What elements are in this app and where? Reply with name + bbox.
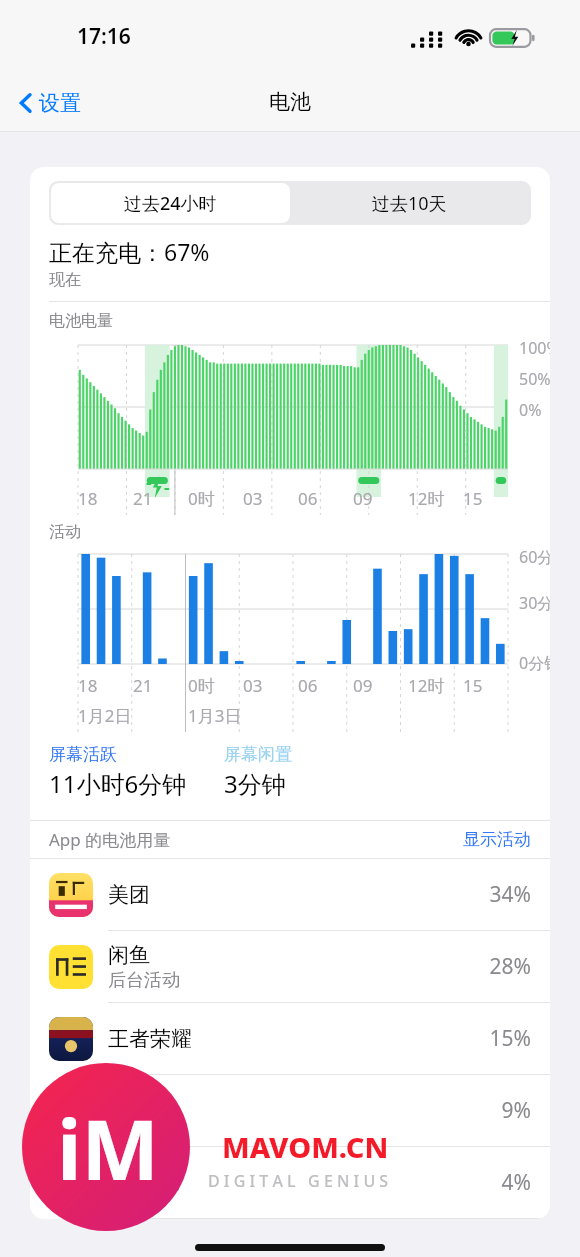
staticText: 显示活动 — [463, 829, 531, 850]
staticText: 15% — [489, 1024, 531, 1053]
staticText: 18 — [78, 674, 98, 697]
staticText: 9% — [501, 1096, 531, 1125]
staticText: 0时 — [188, 674, 215, 697]
staticText: 03 — [243, 674, 263, 697]
staticText: 12时 — [408, 674, 445, 697]
button[interactable]: 闲鱼 — [30, 931, 550, 1002]
staticText: 0时 — [188, 487, 215, 510]
button[interactable]: 后台活动 — [30, 1147, 550, 1218]
staticText: 3分钟 — [224, 767, 286, 800]
staticText: 15 — [463, 674, 483, 697]
staticText: 17:16 — [77, 22, 131, 51]
staticText: 100% — [519, 337, 550, 359]
staticText: 4% — [501, 1168, 531, 1197]
staticText: 0% — [519, 399, 542, 421]
staticText: 活动 — [49, 522, 81, 542]
button[interactable]: 过去10天 — [290, 183, 529, 223]
staticText: 18 — [78, 487, 98, 510]
staticText: 设置 — [39, 90, 81, 116]
staticText: 11小时6分钟 — [49, 767, 187, 800]
staticText: 屏幕闲置 — [224, 744, 292, 765]
button[interactable]: 显示活动 — [463, 829, 531, 850]
staticText: 06 — [298, 674, 318, 697]
staticText: 过去24小时 — [124, 191, 217, 216]
staticText: 60分钟 — [519, 546, 550, 568]
staticText: 28% — [489, 952, 531, 981]
staticText: 屏幕活跃 — [49, 744, 117, 765]
staticText: 后台活动 — [108, 969, 180, 992]
staticText: D I G I T A L G E N I U S — [208, 1170, 389, 1192]
staticText: 03 — [243, 487, 263, 510]
staticText: 21 — [133, 487, 153, 510]
button[interactable]: 过去24小时 — [51, 183, 290, 223]
staticText: App 的电池用量 — [49, 828, 171, 851]
staticText: 现在 — [49, 270, 81, 290]
staticText: 21 — [133, 674, 153, 697]
staticText: MAVOM.CN — [222, 1127, 389, 1166]
button[interactable]: 9% — [30, 1075, 550, 1146]
staticText: 0分钟 — [519, 652, 550, 674]
staticText: 过去10天 — [372, 191, 447, 216]
staticText: 美团 — [108, 882, 150, 908]
staticText: 电池电量 — [49, 311, 113, 331]
staticText: 15 — [463, 487, 483, 510]
staticText: 电池 — [269, 89, 311, 115]
staticText: 09 — [353, 487, 373, 510]
staticText: 闲鱼 — [108, 942, 150, 968]
staticText: 06 — [298, 487, 318, 510]
staticText: 30分钟 — [519, 592, 550, 614]
staticText: 正在充电：67% — [49, 236, 210, 267]
button[interactable]: 美团 — [30, 859, 550, 930]
staticText: 09 — [353, 674, 373, 697]
staticText: 50% — [519, 368, 550, 390]
button[interactable]: 王者荣耀 — [30, 1003, 550, 1074]
staticText: iM — [57, 1092, 159, 1204]
staticText: 12时 — [408, 487, 445, 510]
staticText: 34% — [489, 880, 531, 909]
staticText: 1月3日 — [188, 704, 242, 727]
staticText: 王者荣耀 — [108, 1026, 192, 1052]
staticText: 后台活动 — [108, 1172, 180, 1195]
staticText: 1月2日 — [78, 704, 132, 727]
button[interactable]: 设置 — [14, 84, 85, 122]
